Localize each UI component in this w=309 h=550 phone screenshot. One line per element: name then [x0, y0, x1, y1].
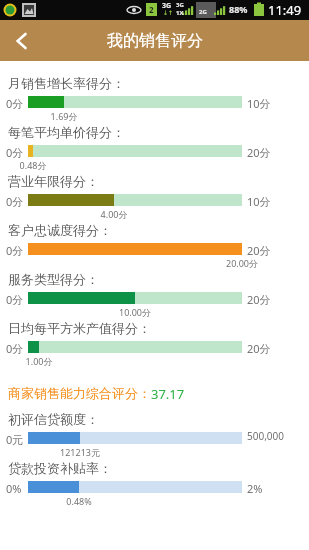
staticText: 初评信贷额度：	[8, 411, 99, 427]
staticText: 10分	[247, 96, 271, 111]
staticText: 服务类型得分：	[8, 271, 99, 287]
staticText: 0%	[6, 481, 22, 496]
staticText: 4.00分	[84, 208, 144, 220]
staticText: 0分	[6, 96, 24, 111]
staticText: 20分	[247, 145, 271, 160]
staticText: 0元	[6, 432, 24, 447]
staticText: 营业年限得分：	[8, 173, 99, 189]
staticText: 88%	[229, 3, 248, 15]
staticText: 商家销售能力综合评分：	[8, 385, 151, 401]
staticText: 0分	[6, 292, 24, 307]
staticText: 20分	[247, 341, 271, 356]
staticText: 500,000	[247, 429, 284, 443]
staticText: 3G	[176, 1, 184, 9]
staticText: 0.48%	[49, 495, 109, 507]
staticText: ↓↑	[163, 9, 174, 16]
staticText: 10分	[247, 194, 271, 209]
staticText: 1X	[176, 9, 184, 17]
staticText: 11:49	[268, 1, 302, 19]
staticText: 37.17	[151, 385, 185, 403]
staticText: 1.69分	[34, 110, 94, 122]
staticText: 20分	[247, 292, 271, 307]
staticText: 我的销售评分	[107, 31, 203, 51]
staticText: 3G	[162, 1, 172, 11]
staticText: 贷款投资补贴率：	[8, 460, 112, 476]
button[interactable]: Back	[0, 20, 44, 61]
staticText: 0分	[6, 341, 24, 356]
staticText: 20.00分	[212, 257, 272, 269]
staticText: 日均每平方米产值得分：	[8, 320, 151, 336]
staticText: 月销售增长率得分：	[8, 75, 125, 91]
staticText: 2	[149, 4, 154, 15]
staticText: 0.48分	[3, 159, 63, 171]
staticText: 0分	[6, 194, 24, 209]
staticText: 2%	[247, 481, 263, 496]
staticText: 0分	[6, 243, 24, 258]
staticText: 121213元	[50, 446, 110, 458]
staticText: 每笔平均单价得分：	[8, 124, 125, 140]
staticText: 0分	[6, 145, 24, 160]
staticText: 20分	[247, 243, 271, 258]
staticText: 1.00分	[9, 355, 69, 367]
staticText: 客户忠诚度得分：	[8, 222, 112, 238]
staticText: 2G	[199, 8, 207, 16]
staticText: 10.00分	[105, 306, 165, 318]
